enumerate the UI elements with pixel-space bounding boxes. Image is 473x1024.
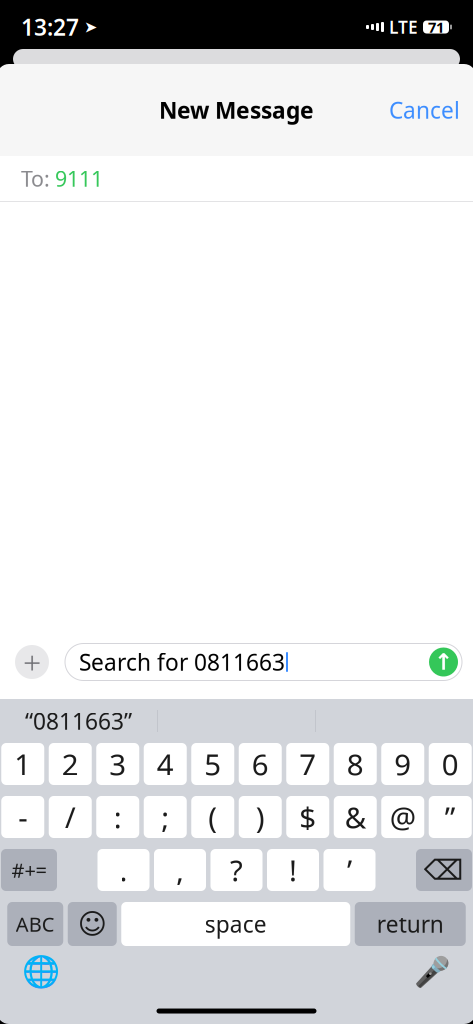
staticText: 2: [62, 744, 79, 783]
staticText: 0: [442, 744, 459, 783]
staticText: 1: [14, 744, 31, 783]
button[interactable]: return: [355, 902, 466, 946]
staticText: -: [18, 797, 27, 836]
button[interactable]: :: [96, 796, 139, 838]
staticText: 7: [299, 744, 316, 783]
staticText: ☺: [78, 908, 107, 940]
button[interactable]: 3: [96, 743, 139, 785]
button[interactable]: Delete: [416, 849, 472, 891]
button[interactable]: Emoji: [68, 902, 117, 946]
staticText: return: [377, 909, 444, 939]
staticText: +: [23, 641, 41, 683]
button[interactable]: 8: [334, 743, 377, 785]
staticText: ,: [176, 850, 184, 889]
button[interactable]: Cancel: [373, 85, 473, 135]
button[interactable]: Switch keyboard: [19, 950, 63, 994]
button[interactable]: ”: [429, 796, 472, 838]
button[interactable]: Dictation: [410, 950, 454, 994]
button[interactable]: ?: [210, 849, 262, 891]
staticText: LTE: [389, 15, 418, 38]
staticText: .: [119, 850, 127, 889]
staticText: 🌐: [22, 954, 60, 989]
staticText: 3: [109, 744, 126, 783]
staticText: ”: [445, 797, 456, 836]
button[interactable]: #+=: [1, 849, 57, 891]
staticText: Search for 0811663: [79, 647, 285, 677]
staticText: Cancel: [389, 95, 460, 125]
staticText: 4: [157, 744, 174, 783]
staticText: 6: [252, 744, 269, 783]
button[interactable]: @: [381, 796, 424, 838]
staticText: #+=: [11, 857, 46, 883]
button[interactable]: &: [334, 796, 377, 838]
button[interactable]: 0: [429, 743, 472, 785]
staticText: ↑: [434, 649, 453, 675]
staticText: space: [205, 909, 267, 939]
staticText: To:: [21, 164, 50, 193]
button[interactable]: 4: [144, 743, 187, 785]
button[interactable]: ): [239, 796, 282, 838]
staticText: ;: [161, 797, 169, 836]
staticText: 9111: [55, 164, 103, 193]
button[interactable]: 7: [286, 743, 329, 785]
staticText: 13:27: [21, 12, 79, 42]
staticText: 9: [394, 744, 411, 783]
staticText: ➤: [84, 18, 97, 36]
button[interactable]: 9: [381, 743, 424, 785]
button[interactable]: (: [191, 796, 234, 838]
staticText: ⌫: [424, 854, 464, 886]
staticText: !: [289, 850, 297, 889]
button[interactable]: Add attachment: [15, 645, 49, 679]
staticText: 🎤: [413, 955, 450, 989]
staticText: 8: [347, 744, 364, 783]
button[interactable]: .: [97, 849, 149, 891]
staticText: $: [299, 797, 316, 836]
staticText: ’: [347, 850, 352, 889]
button[interactable]: ’: [323, 849, 375, 891]
staticText: @: [390, 797, 416, 836]
button[interactable]: 1: [1, 743, 44, 785]
staticText: &: [345, 797, 366, 836]
button[interactable]: “0811663”: [0, 699, 157, 743]
button[interactable]: !: [267, 849, 319, 891]
staticText: /: [65, 797, 76, 836]
button[interactable]: 6: [239, 743, 282, 785]
button[interactable]: 5: [191, 743, 234, 785]
staticText: ?: [230, 850, 243, 889]
button[interactable]: ,: [154, 849, 206, 891]
staticText: “0811663”: [25, 706, 132, 736]
button[interactable]: Send: [429, 647, 458, 676]
staticText: 5: [204, 744, 221, 783]
button[interactable]: $: [286, 796, 329, 838]
button[interactable]: 2: [49, 743, 92, 785]
staticText: 71: [428, 17, 444, 37]
button[interactable]: ABC: [7, 902, 63, 946]
staticText: ABC: [16, 911, 55, 937]
button[interactable]: space: [121, 902, 350, 946]
button[interactable]: -: [1, 796, 44, 838]
staticText: ): [256, 797, 265, 836]
staticText: :: [114, 797, 122, 836]
button[interactable]: /: [49, 796, 92, 838]
button[interactable]: ;: [144, 796, 187, 838]
staticText: New Message: [159, 95, 314, 125]
staticText: (: [208, 797, 217, 836]
